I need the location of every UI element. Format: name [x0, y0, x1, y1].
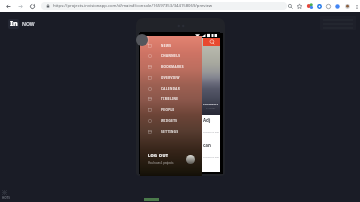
staticText: PEOPLE: [161, 108, 175, 112]
staticText: Adj: [203, 117, 211, 123]
staticText: CALENDAR: [161, 87, 181, 91]
staticText: OVERVIEW: [161, 76, 180, 80]
staticText: https://projects.invisionapp.com/d/main#…: [53, 3, 213, 9]
staticText: CHANNELS: [203, 102, 219, 105]
button[interactable]: OVERVIEW: [140, 72, 202, 83]
staticText: Posted 2h ago: [203, 130, 220, 133]
button[interactable]: NEWS: [140, 40, 202, 51]
button[interactable]: Forward: [16, 2, 25, 11]
staticText: WIDGETS: [161, 119, 178, 123]
button[interactable]: PEOPLE: [140, 104, 202, 115]
button[interactable]: SETTINGS: [140, 126, 202, 137]
button[interactable]: CHANNELS: [140, 50, 202, 61]
staticText: NOW: [22, 21, 35, 28]
button[interactable]: BOOKMARKS: [140, 61, 202, 72]
button[interactable]: TIMELINE: [140, 93, 202, 104]
staticText: BOOKMARKS: [161, 65, 184, 69]
staticText: 24 stories: [206, 107, 216, 110]
button[interactable]: More: [353, 3, 360, 10]
button[interactable]: Profile: [136, 34, 148, 46]
staticText: LOG OUT: [148, 153, 169, 158]
staticText: can: [203, 142, 211, 148]
staticText: NEWS: [161, 44, 172, 48]
staticText: SETTINGS: [161, 130, 179, 134]
button[interactable]: Search: [203, 38, 220, 46]
button[interactable]: CALENDAR: [140, 83, 202, 94]
staticText: TIMELINE: [161, 97, 179, 101]
staticText: CHANNELS: [161, 54, 181, 58]
staticText: In: [10, 19, 18, 29]
button[interactable]: In: [8, 19, 35, 29]
button[interactable]: Reload: [28, 2, 37, 11]
button[interactable]: WIDGETS: [140, 115, 202, 126]
button[interactable]: https://projects.invisionapp.com/d/main#…: [41, 2, 287, 10]
staticText: You have 4 projects: [148, 161, 174, 165]
button[interactable]: LOG OUT: [140, 150, 202, 168]
button[interactable]: Back: [4, 2, 13, 11]
staticText: Posted 5h ago: [203, 155, 220, 158]
staticText: HOTS: [2, 196, 10, 200]
